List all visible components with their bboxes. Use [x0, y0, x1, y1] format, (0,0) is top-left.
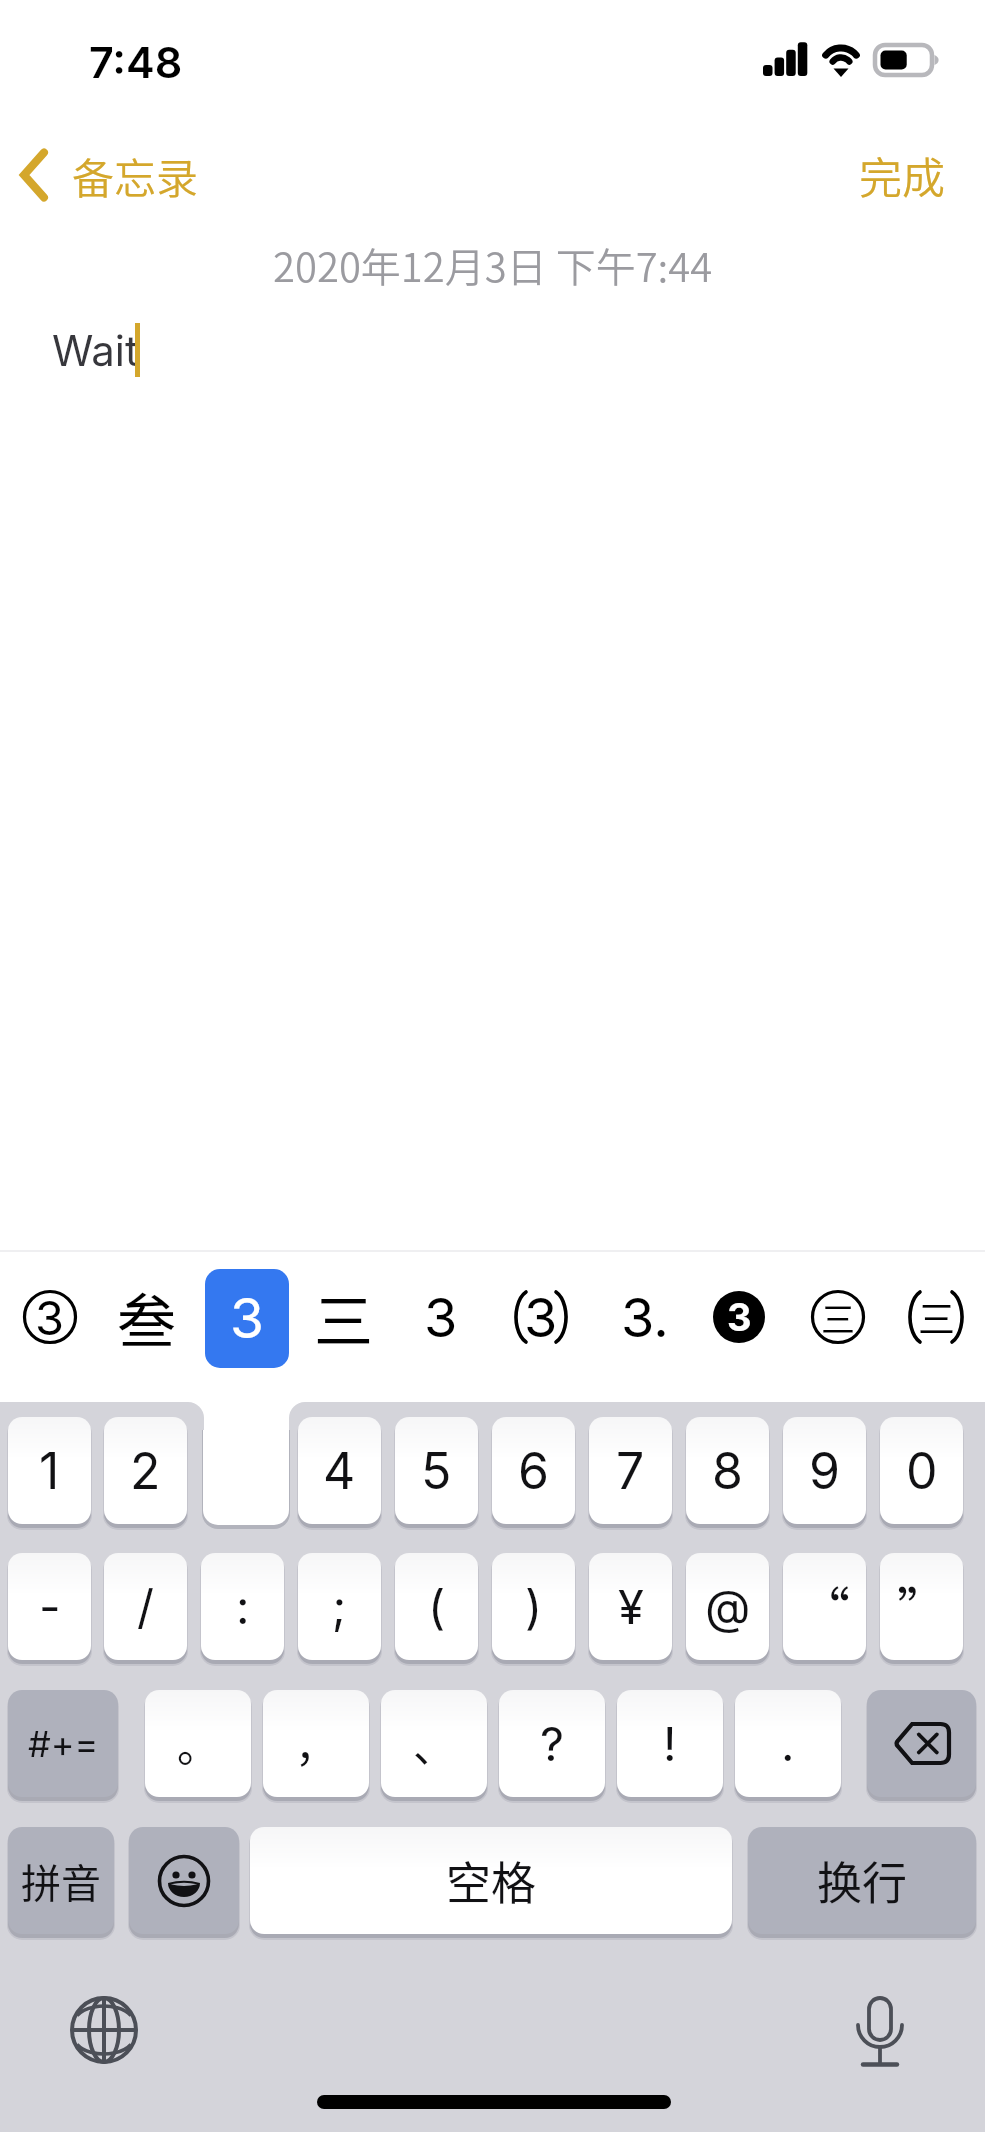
button[interactable]: !	[617, 1690, 723, 1797]
button[interactable]: 6	[492, 1417, 575, 1524]
button[interactable]: 3	[391, 1267, 491, 1367]
staticText: 5	[421, 1441, 452, 1501]
staticText: (	[428, 1578, 446, 1635]
staticText: 3	[424, 1285, 458, 1350]
button[interactable]: ;	[298, 1553, 381, 1660]
button[interactable]: 3	[699, 1277, 779, 1357]
button[interactable]: 3	[205, 1269, 289, 1368]
button[interactable]: 2	[104, 1417, 187, 1524]
button[interactable]: Dictation	[840, 1992, 920, 2072]
staticText: 9	[809, 1441, 841, 1501]
staticText: ;	[332, 1578, 347, 1635]
button[interactable]: (	[395, 1553, 478, 1660]
button[interactable]: 3	[203, 1402, 289, 1525]
staticText: 3	[230, 1285, 264, 1352]
staticText: 。	[177, 1713, 220, 1774]
staticText: 0	[906, 1441, 938, 1501]
button[interactable]: 5	[395, 1417, 478, 1524]
button[interactable]: ，	[263, 1690, 369, 1797]
button[interactable]: 7	[589, 1417, 672, 1524]
button[interactable]: 三	[891, 1272, 981, 1362]
staticText: 3	[35, 1289, 65, 1346]
staticText: “	[800, 1571, 850, 1643]
staticText: ?	[540, 1715, 565, 1772]
staticText: 2	[130, 1441, 161, 1501]
staticText: 1	[39, 1441, 60, 1501]
staticText: 2020年12月3日 下午7:44	[273, 236, 713, 294]
button[interactable]: 三	[793, 1272, 883, 1362]
staticText: 三	[821, 1293, 855, 1342]
staticText: ，	[295, 1713, 338, 1774]
button[interactable]: -	[8, 1553, 91, 1660]
staticText: .	[781, 1715, 795, 1772]
button[interactable]: 3	[496, 1272, 586, 1362]
button[interactable]: 1	[8, 1417, 91, 1524]
button[interactable]: ”	[880, 1553, 963, 1660]
button[interactable]: ¥	[589, 1553, 672, 1660]
button[interactable]: :	[201, 1553, 284, 1660]
button[interactable]: Emoji	[129, 1827, 239, 1934]
staticText: 3	[727, 1294, 752, 1340]
button[interactable]: .	[735, 1690, 841, 1797]
staticText: 3.	[621, 1285, 669, 1350]
staticText: 6	[518, 1441, 550, 1501]
staticText: 三	[314, 1275, 374, 1360]
staticText: 备忘录	[72, 145, 199, 206]
button[interactable]: 8	[686, 1417, 769, 1524]
button[interactable]: #+=	[8, 1690, 118, 1797]
staticText: !	[663, 1715, 677, 1772]
staticText: 空格	[446, 1848, 537, 1913]
button[interactable]: 0	[880, 1417, 963, 1524]
button[interactable]: 换行	[748, 1827, 976, 1934]
button[interactable]: Switch keyboard	[64, 1990, 144, 2070]
button[interactable]: 、	[381, 1690, 487, 1797]
button[interactable]: /	[104, 1553, 187, 1660]
button[interactable]: 叁	[97, 1267, 197, 1367]
staticText: 完成	[859, 144, 945, 206]
button[interactable]: Backspace	[867, 1690, 976, 1797]
button[interactable]: “	[783, 1553, 866, 1660]
staticText: @	[705, 1578, 751, 1635]
staticText: ¥	[618, 1578, 644, 1635]
staticText: Wait	[52, 325, 139, 376]
staticText: -	[39, 1578, 61, 1635]
button[interactable]: 4	[298, 1417, 381, 1524]
staticText: 拼音	[21, 1852, 101, 1910]
button[interactable]: 完成	[838, 131, 966, 219]
button[interactable]: 3	[9, 1267, 90, 1367]
staticText: /	[137, 1578, 154, 1635]
button[interactable]: ?	[499, 1690, 605, 1797]
staticText: 3	[524, 1285, 558, 1350]
button[interactable]: 拼音	[8, 1827, 114, 1934]
staticText: 换行	[817, 1848, 908, 1913]
button[interactable]: @	[686, 1553, 769, 1660]
button[interactable]: 空格	[250, 1827, 732, 1934]
staticText: )	[525, 1578, 543, 1635]
button[interactable]: 三	[294, 1267, 394, 1367]
button[interactable]: 备忘录	[6, 131, 199, 219]
button[interactable]: )	[492, 1553, 575, 1660]
staticText: :	[236, 1578, 250, 1635]
button[interactable]: 。	[145, 1690, 251, 1797]
staticText: #+=	[28, 1722, 99, 1766]
button[interactable]: 3.	[595, 1267, 695, 1367]
button[interactable]: 9	[783, 1417, 866, 1524]
staticText: 7	[616, 1441, 645, 1501]
staticText: 叁	[117, 1275, 177, 1360]
staticText: 三	[918, 1290, 955, 1344]
staticText: ”	[897, 1571, 947, 1643]
staticText: 7:48	[89, 36, 183, 88]
staticText: 4	[323, 1441, 356, 1501]
staticText: 8	[712, 1441, 743, 1501]
staticText: 、	[413, 1713, 456, 1774]
